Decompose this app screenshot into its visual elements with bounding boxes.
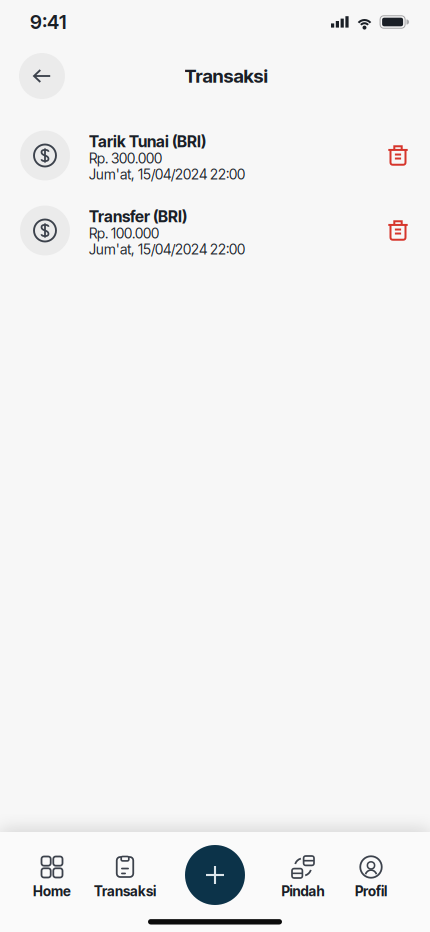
staticText: Transaksi (94, 883, 156, 900)
button[interactable]: Transaksi (85, 856, 165, 912)
staticText: Jum'at, 15/04/2024 22:00 (89, 166, 245, 183)
button[interactable]: Pindah (265, 856, 341, 912)
staticText: 9:41 (30, 10, 66, 34)
staticText: Tarik Tunai (BRI) (89, 132, 206, 151)
staticText: Transfer (BRI) (89, 207, 187, 226)
button[interactable]: Home (19, 856, 85, 912)
staticText: Home (33, 883, 71, 900)
button[interactable]: Delete transaction (376, 130, 420, 180)
staticText: Rp. 100.000 (89, 225, 159, 242)
staticText: Transaksi (184, 65, 267, 87)
staticText: Profil (355, 883, 387, 900)
button[interactable]: Back (19, 53, 65, 99)
button[interactable]: Add (185, 845, 245, 905)
staticText: Rp. 300.000 (89, 150, 162, 167)
button[interactable]: Delete transaction (376, 205, 420, 255)
staticText: Jum'at, 15/04/2024 22:00 (89, 241, 245, 258)
button[interactable]: Profil (341, 856, 401, 912)
staticText: Pindah (281, 883, 324, 900)
